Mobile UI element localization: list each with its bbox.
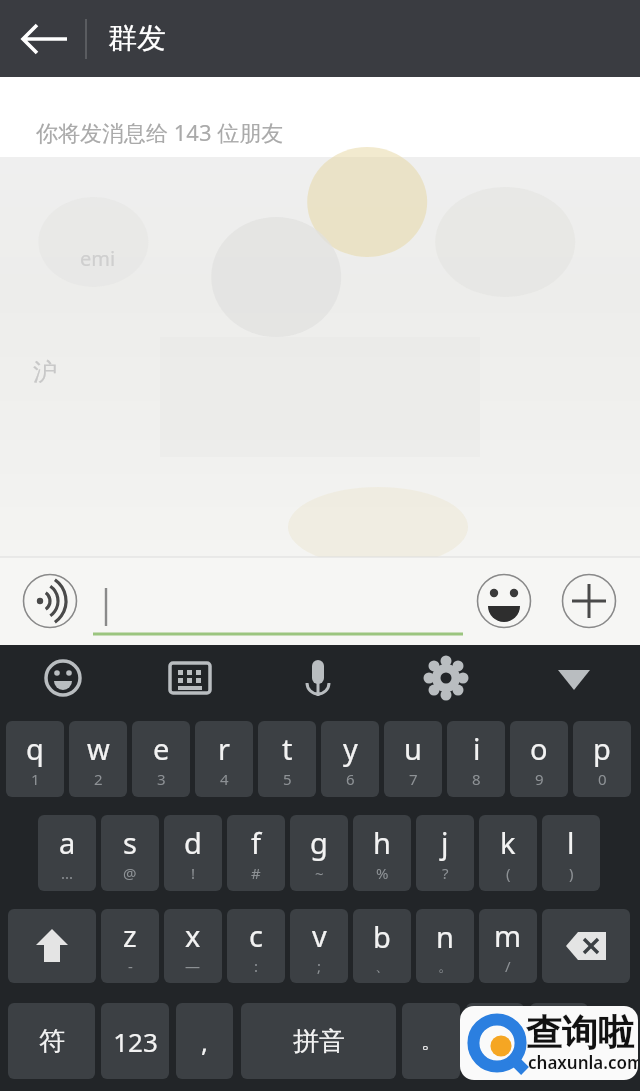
staticText: j <box>441 823 449 862</box>
button[interactable]: r <box>195 721 253 797</box>
button[interactable]: f <box>227 815 285 891</box>
button[interactable]: Emoji <box>33 648 93 708</box>
button[interactable]: a <box>38 815 96 891</box>
staticText: h <box>373 823 391 862</box>
button[interactable]: More <box>561 573 617 629</box>
staticText: 查询啦 <box>526 1010 634 1055</box>
button[interactable]: v <box>290 909 348 983</box>
staticText: 2 <box>94 769 103 789</box>
staticText: 你将发消息给 143 位朋友 <box>36 117 284 147</box>
staticText: 4 <box>220 769 229 789</box>
staticText: ) <box>569 863 574 883</box>
staticText: z <box>123 916 137 955</box>
staticText: s <box>123 823 137 862</box>
button[interactable] <box>93 572 463 636</box>
staticText: m <box>494 916 522 955</box>
staticText: p <box>593 729 611 768</box>
staticText: a <box>59 823 76 862</box>
staticText: k <box>500 823 516 862</box>
staticText: 7 <box>409 769 418 789</box>
button[interactable]: 符 <box>8 1003 95 1079</box>
staticText: 。 <box>438 957 453 976</box>
button[interactable]: 拼音 <box>241 1003 396 1079</box>
staticText: 拼音 <box>293 1025 345 1058</box>
button[interactable]: 123 <box>101 1003 169 1079</box>
staticText: 群发 <box>108 20 166 57</box>
staticText: v <box>312 916 327 955</box>
button[interactable]: Emoji <box>476 573 532 629</box>
button[interactable]: p <box>573 721 631 797</box>
button[interactable]: Settings <box>416 648 476 708</box>
staticText: ; <box>317 956 322 976</box>
staticText: u <box>404 729 422 768</box>
button[interactable]: s <box>101 815 159 891</box>
staticText: o <box>530 729 548 768</box>
staticText: 符 <box>39 1025 65 1058</box>
staticText: / <box>505 956 511 976</box>
button[interactable]: 。 <box>402 1003 460 1079</box>
button[interactable]: c <box>227 909 285 983</box>
staticText: 1 <box>31 769 40 789</box>
staticText: 6 <box>346 769 355 789</box>
staticText: chaxunla.com <box>528 1051 638 1074</box>
staticText: i <box>473 729 481 768</box>
staticText: c <box>249 916 263 955</box>
staticText: ! <box>191 863 196 883</box>
button[interactable]: m <box>479 909 537 983</box>
button[interactable]: Shift <box>8 909 96 983</box>
button[interactable]: u <box>384 721 442 797</box>
button[interactable]: q <box>6 721 64 797</box>
staticText: w <box>87 729 110 768</box>
button[interactable]: Hide keyboard <box>544 648 604 708</box>
button[interactable]: n <box>416 909 474 983</box>
staticText: 沪 <box>33 357 57 387</box>
button[interactable]: b <box>353 909 411 983</box>
button[interactable]: o <box>510 721 568 797</box>
staticText: y <box>343 729 358 768</box>
staticText: ... <box>61 863 74 883</box>
button[interactable]: d <box>164 815 222 891</box>
button[interactable]: g <box>290 815 348 891</box>
staticText: 8 <box>472 769 481 789</box>
button[interactable]: h <box>353 815 411 891</box>
staticText: : <box>254 956 259 976</box>
button[interactable]: Voice input <box>22 573 78 629</box>
staticText: x <box>185 916 201 955</box>
staticText: # <box>251 863 261 883</box>
button[interactable]: Backspace <box>542 909 630 983</box>
staticText: f <box>251 823 261 862</box>
staticText: 123 <box>113 1024 158 1059</box>
staticText: ( <box>506 863 511 883</box>
button[interactable] <box>530 1003 588 1079</box>
button[interactable]: Voice <box>288 648 348 708</box>
staticText: , <box>201 1024 208 1059</box>
staticText: 0 <box>598 769 607 789</box>
staticText: — <box>185 956 201 976</box>
button[interactable]: w <box>69 721 127 797</box>
staticText: 。 <box>421 1029 441 1054</box>
staticText: ? <box>442 863 449 883</box>
button[interactable]: , <box>176 1003 233 1079</box>
staticText: 3 <box>157 769 166 789</box>
button[interactable] <box>466 1003 524 1079</box>
staticText: emi <box>80 245 116 272</box>
button[interactable]: i <box>447 721 505 797</box>
staticText: - <box>128 956 133 976</box>
staticText: 5 <box>283 769 292 789</box>
button[interactable]: Back <box>14 8 76 70</box>
button[interactable]: j <box>416 815 474 891</box>
button[interactable]: x <box>164 909 222 983</box>
staticText: e <box>153 729 170 768</box>
staticText: t <box>282 729 293 768</box>
staticText: r <box>218 729 230 768</box>
button[interactable]: l <box>542 815 600 891</box>
staticText: b <box>373 917 391 956</box>
button[interactable]: t <box>258 721 316 797</box>
staticText: g <box>310 823 328 862</box>
button[interactable]: z <box>101 909 159 983</box>
button[interactable]: k <box>479 815 537 891</box>
button[interactable]: e <box>132 721 190 797</box>
staticText: ~ <box>315 863 324 883</box>
button[interactable]: Keyboard <box>160 648 220 708</box>
button[interactable]: y <box>321 721 379 797</box>
